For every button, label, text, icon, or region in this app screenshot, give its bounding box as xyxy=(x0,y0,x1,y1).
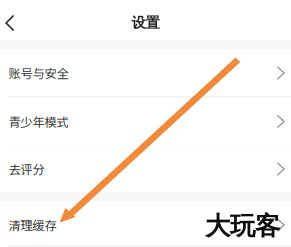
button[interactable]: 去评分 xyxy=(0,145,291,192)
staticText: 大玩客 xyxy=(205,210,280,242)
button[interactable]: 账号与安全 xyxy=(0,49,291,96)
staticText: 青少年模式 xyxy=(8,113,68,130)
button[interactable]: Back xyxy=(0,0,25,40)
button[interactable]: 清理缓存 xyxy=(0,201,291,247)
staticText: 账号与安全 xyxy=(8,64,68,82)
staticText: 去评分 xyxy=(8,160,44,178)
staticText: 清理缓存 xyxy=(8,216,56,234)
staticText: 设置 xyxy=(131,14,159,32)
button[interactable]: 青少年模式 xyxy=(0,98,291,145)
